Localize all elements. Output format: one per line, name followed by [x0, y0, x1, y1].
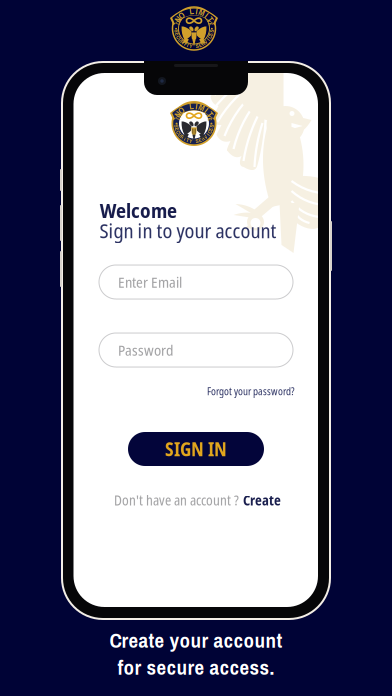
staticText: N [177, 17, 180, 24]
staticText: E [209, 125, 212, 133]
staticText: L [189, 5, 193, 17]
staticText: I [184, 135, 185, 142]
staticText: C [208, 33, 211, 41]
staticText: C [177, 128, 180, 136]
staticText: C [208, 128, 211, 136]
staticText: I [177, 20, 178, 28]
staticText: E [176, 125, 179, 133]
staticText: Y [189, 137, 192, 145]
staticText [185, 102, 187, 114]
staticText: I [196, 100, 198, 112]
staticText: I [196, 5, 198, 17]
staticText: I [207, 36, 208, 43]
staticText: I [206, 109, 207, 117]
staticText: V [207, 112, 210, 120]
staticText: I [184, 40, 185, 47]
staticText: L [189, 100, 193, 112]
staticText: S [210, 27, 213, 35]
staticText: V [204, 38, 207, 46]
staticText: C [177, 33, 180, 41]
staticText [185, 7, 187, 19]
staticText: R [181, 38, 184, 46]
staticText: S [210, 122, 213, 130]
staticText: I [207, 131, 208, 138]
staticText: E [176, 30, 179, 38]
staticText: S [196, 137, 199, 145]
button[interactable]: Don't have an account ? [114, 491, 281, 509]
button[interactable]: Password [99, 333, 293, 367]
button[interactable]: Enter Email [99, 265, 293, 299]
staticText: T [208, 108, 212, 120]
staticText: Welcome [100, 196, 177, 224]
staticText: E [199, 136, 202, 144]
staticText: T [202, 106, 205, 114]
staticText: Don't have an account ? [114, 491, 239, 509]
staticText: T [186, 41, 189, 49]
staticText: R [202, 40, 205, 47]
staticText: E [182, 106, 185, 114]
staticText: I [205, 104, 207, 116]
staticText: S [196, 42, 199, 50]
staticText: T [186, 136, 189, 144]
staticText: Password [118, 340, 173, 360]
staticText: S [186, 105, 189, 113]
staticText: O [178, 104, 184, 116]
staticText: T [203, 11, 206, 19]
staticText: S [185, 9, 188, 17]
staticText: Y [189, 42, 192, 50]
staticText: V [179, 14, 182, 21]
button[interactable]: Forgot your password? [100, 385, 294, 398]
staticText: R [181, 133, 184, 141]
staticText: I [205, 9, 207, 21]
staticText: V [208, 17, 211, 24]
staticText: I [178, 115, 179, 123]
staticText: M [199, 7, 205, 19]
staticText: T [189, 8, 192, 15]
staticText: N [178, 112, 181, 120]
staticText: S [175, 27, 178, 35]
staticText: S [175, 122, 178, 130]
staticText: N [175, 108, 180, 120]
staticText: V [204, 133, 207, 141]
staticText: E [182, 11, 185, 19]
staticText: Enter Email [118, 272, 182, 292]
staticText: A [199, 105, 202, 113]
staticText: N [175, 13, 180, 25]
staticText: U [179, 36, 182, 43]
staticText: G [196, 8, 199, 15]
staticText: A [200, 9, 203, 17]
staticText: V [180, 109, 183, 117]
staticText: for secure access. [117, 653, 274, 681]
staticText: I [206, 14, 207, 21]
staticText: T [208, 13, 212, 25]
staticText: T [189, 103, 192, 111]
staticText: E [199, 41, 202, 49]
staticText: E [208, 115, 211, 123]
button[interactable]: SIGN IN [128, 432, 264, 466]
staticText: Create your account [109, 626, 282, 654]
staticText: Forgot your password? [207, 385, 294, 398]
staticText: M [199, 102, 205, 114]
staticText: R [202, 135, 205, 142]
staticText: E [209, 20, 212, 28]
staticText: SIGN IN [165, 436, 227, 462]
staticText: U [179, 131, 182, 138]
staticText: E [209, 30, 212, 38]
staticText: Sign in to your account [99, 217, 276, 244]
staticText: O [178, 9, 184, 21]
staticText: G [195, 103, 199, 111]
staticText: Create [243, 491, 281, 509]
